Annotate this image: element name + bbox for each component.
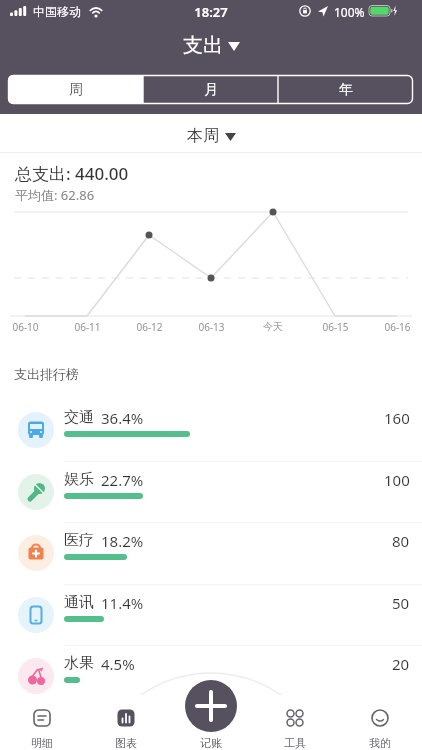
- button[interactable]: 明细: [14, 700, 70, 750]
- staticText: 36.4%: [101, 408, 144, 428]
- button[interactable]: 年: [278, 75, 413, 104]
- staticText: 总支出: 440.00: [15, 162, 129, 185]
- staticText: 本周: [187, 126, 219, 146]
- staticText: 18.2%: [101, 531, 144, 551]
- staticText: 18:27: [194, 3, 228, 21]
- staticText: 06-15: [322, 320, 349, 334]
- staticText: 记账: [200, 736, 222, 750]
- staticText: 22.7%: [101, 470, 144, 490]
- staticText: 50: [392, 593, 410, 613]
- staticText: 今天: [263, 320, 283, 333]
- staticText: 支出排行榜: [14, 366, 79, 382]
- staticText: 明细: [31, 736, 53, 750]
- staticText: 图表: [115, 736, 137, 750]
- staticText: 06-12: [136, 320, 163, 334]
- button[interactable]: 工具: [267, 700, 323, 750]
- staticText: 月: [204, 81, 218, 99]
- staticText: 20: [392, 654, 410, 674]
- staticText: 160: [384, 408, 410, 428]
- staticText: 年: [339, 81, 353, 99]
- button[interactable]: 娱乐: [0, 461, 422, 523]
- button[interactable]: [185, 680, 237, 732]
- staticText: 交通: [64, 408, 94, 427]
- staticText: 平均值: 62.86: [15, 186, 95, 204]
- button[interactable]: 周: [8, 75, 143, 104]
- staticText: 06-16: [384, 320, 411, 334]
- button[interactable]: 水果: [0, 645, 422, 707]
- button[interactable]: 图表: [98, 700, 154, 750]
- button[interactable]: 交通: [0, 399, 422, 461]
- staticText: 06-10: [12, 320, 39, 334]
- staticText: 工具: [284, 736, 306, 750]
- staticText: 娱乐: [64, 470, 94, 489]
- staticText: 06-13: [198, 320, 225, 334]
- staticText: 支出: [183, 33, 223, 58]
- staticText: 通讯: [64, 593, 94, 612]
- staticText: 100%: [334, 4, 365, 20]
- staticText: 11.4%: [101, 593, 144, 613]
- staticText: 我的: [369, 736, 391, 750]
- staticText: 周: [69, 81, 83, 99]
- staticText: 06-11: [74, 320, 101, 334]
- button[interactable]: 月: [143, 75, 278, 104]
- staticText: 医疗: [64, 531, 94, 550]
- staticText: 80: [392, 531, 410, 551]
- staticText: 4.5%: [101, 654, 135, 674]
- staticText: 水果: [64, 654, 94, 673]
- button[interactable]: 通讯: [0, 584, 422, 646]
- staticText: 中国移动: [33, 4, 81, 19]
- button[interactable]: 我的: [352, 700, 408, 750]
- staticText: 100: [384, 470, 410, 490]
- button[interactable]: 医疗: [0, 522, 422, 584]
